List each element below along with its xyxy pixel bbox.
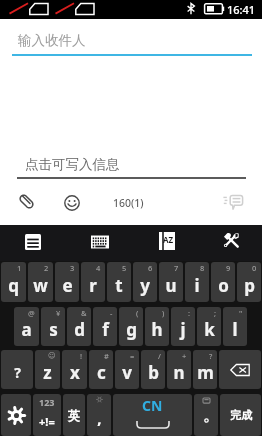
staticText: b bbox=[148, 361, 159, 384]
button[interactable]: Candidates bbox=[20, 229, 46, 255]
staticText: z bbox=[43, 361, 52, 384]
staticText: # bbox=[104, 351, 109, 361]
staticText: s bbox=[49, 318, 58, 341]
button[interactable]: Backspace bbox=[219, 350, 261, 389]
staticText: 4 bbox=[96, 263, 101, 273]
staticText: c bbox=[97, 361, 106, 384]
staticText: d bbox=[74, 318, 85, 341]
staticText: f bbox=[102, 318, 109, 341]
button[interactable]: l bbox=[223, 307, 247, 346]
staticText: v bbox=[122, 361, 132, 384]
button[interactable]: , bbox=[87, 394, 111, 436]
staticText: AZ bbox=[163, 234, 174, 245]
staticText: x bbox=[70, 361, 80, 384]
staticText: + bbox=[182, 351, 187, 361]
staticText: 1 bbox=[17, 263, 22, 273]
button[interactable]: Emoji bbox=[59, 190, 85, 216]
button[interactable]: p bbox=[237, 262, 261, 302]
staticText: - bbox=[110, 308, 113, 318]
button[interactable]: Space bbox=[113, 394, 192, 436]
staticText: j bbox=[180, 318, 186, 341]
staticText: n bbox=[173, 361, 185, 384]
button[interactable]: Send message bbox=[220, 189, 246, 215]
staticText: y bbox=[140, 274, 150, 297]
staticText: r bbox=[89, 274, 97, 297]
staticText: a bbox=[21, 318, 32, 341]
button[interactable]: Keyboard layout bbox=[87, 229, 113, 255]
button[interactable]: u bbox=[159, 262, 183, 302]
staticText: @ bbox=[28, 308, 35, 318]
button[interactable]: y bbox=[133, 262, 157, 302]
button[interactable]: Attach bbox=[13, 188, 39, 214]
button[interactable]: Period bbox=[194, 394, 218, 436]
staticText: 16:41 bbox=[227, 2, 256, 17]
staticText: ( bbox=[136, 308, 139, 318]
button[interactable]: z bbox=[35, 350, 60, 389]
button[interactable]: 完成 bbox=[220, 394, 261, 436]
button[interactable]: q bbox=[1, 262, 26, 302]
staticText: i bbox=[194, 274, 200, 297]
staticText: , bbox=[97, 408, 102, 428]
button[interactable]: h bbox=[145, 307, 169, 346]
staticText: ) bbox=[162, 308, 165, 318]
staticText: m bbox=[197, 361, 214, 384]
button[interactable]: s bbox=[41, 307, 65, 346]
button[interactable]: i bbox=[185, 262, 209, 302]
button[interactable]: r bbox=[81, 262, 105, 302]
button[interactable]: n bbox=[167, 350, 191, 389]
staticText: 完成 bbox=[230, 408, 252, 422]
staticText: : bbox=[188, 308, 191, 318]
staticText: CN bbox=[142, 396, 163, 415]
button[interactable]: e bbox=[55, 262, 79, 302]
button[interactable]: g bbox=[119, 307, 143, 346]
staticText: = bbox=[130, 351, 135, 361]
staticText: o bbox=[218, 274, 229, 297]
staticText: w bbox=[33, 274, 48, 297]
button[interactable]: 123 bbox=[33, 394, 61, 436]
button[interactable]: k bbox=[197, 307, 221, 346]
staticText: 9 bbox=[226, 263, 231, 273]
staticText: 123 bbox=[39, 396, 55, 408]
button[interactable]: w bbox=[28, 262, 53, 302]
staticText: 160(1) bbox=[113, 196, 144, 210]
staticText: h bbox=[151, 318, 163, 341]
button[interactable]: a bbox=[14, 307, 39, 346]
button[interactable]: Input settings bbox=[1, 394, 31, 436]
staticText: " bbox=[239, 308, 243, 318]
staticText: l bbox=[232, 318, 238, 341]
staticText: ¥ bbox=[56, 308, 61, 318]
button[interactable]: Dictionary bbox=[154, 228, 180, 254]
staticText: ; bbox=[214, 308, 217, 318]
staticText: +!= bbox=[39, 414, 55, 429]
button[interactable]: o bbox=[211, 262, 235, 302]
staticText: 3 bbox=[70, 263, 75, 273]
staticText: 英 bbox=[68, 408, 80, 423]
button[interactable]: Settings bbox=[218, 227, 244, 253]
staticText: ? bbox=[209, 351, 213, 361]
staticText: q bbox=[8, 274, 19, 297]
button[interactable]: b bbox=[141, 350, 165, 389]
button[interactable]: 点击可写入信息 bbox=[25, 156, 120, 173]
staticText: 8 bbox=[200, 263, 205, 273]
button[interactable]: 输入收件人 bbox=[18, 32, 86, 49]
button[interactable]: c bbox=[89, 350, 113, 389]
button[interactable]: t bbox=[107, 262, 131, 302]
button[interactable]: m bbox=[193, 350, 217, 389]
staticText: k bbox=[204, 318, 215, 341]
staticText: u bbox=[165, 274, 177, 297]
staticText: & bbox=[81, 308, 87, 318]
button[interactable]: ? bbox=[1, 350, 33, 389]
staticText: ☺ bbox=[48, 351, 56, 360]
button[interactable]: 英 bbox=[63, 394, 85, 436]
staticText: / bbox=[158, 351, 161, 361]
staticText: t bbox=[115, 274, 123, 297]
staticText: p bbox=[244, 274, 255, 297]
button[interactable]: j bbox=[171, 307, 195, 346]
staticText: e bbox=[62, 274, 73, 297]
button[interactable]: v bbox=[115, 350, 139, 389]
button[interactable]: f bbox=[93, 307, 117, 346]
button[interactable]: d bbox=[67, 307, 91, 346]
staticText: 2 bbox=[44, 263, 49, 273]
staticText: 6 bbox=[148, 263, 153, 273]
button[interactable]: x bbox=[62, 350, 87, 389]
